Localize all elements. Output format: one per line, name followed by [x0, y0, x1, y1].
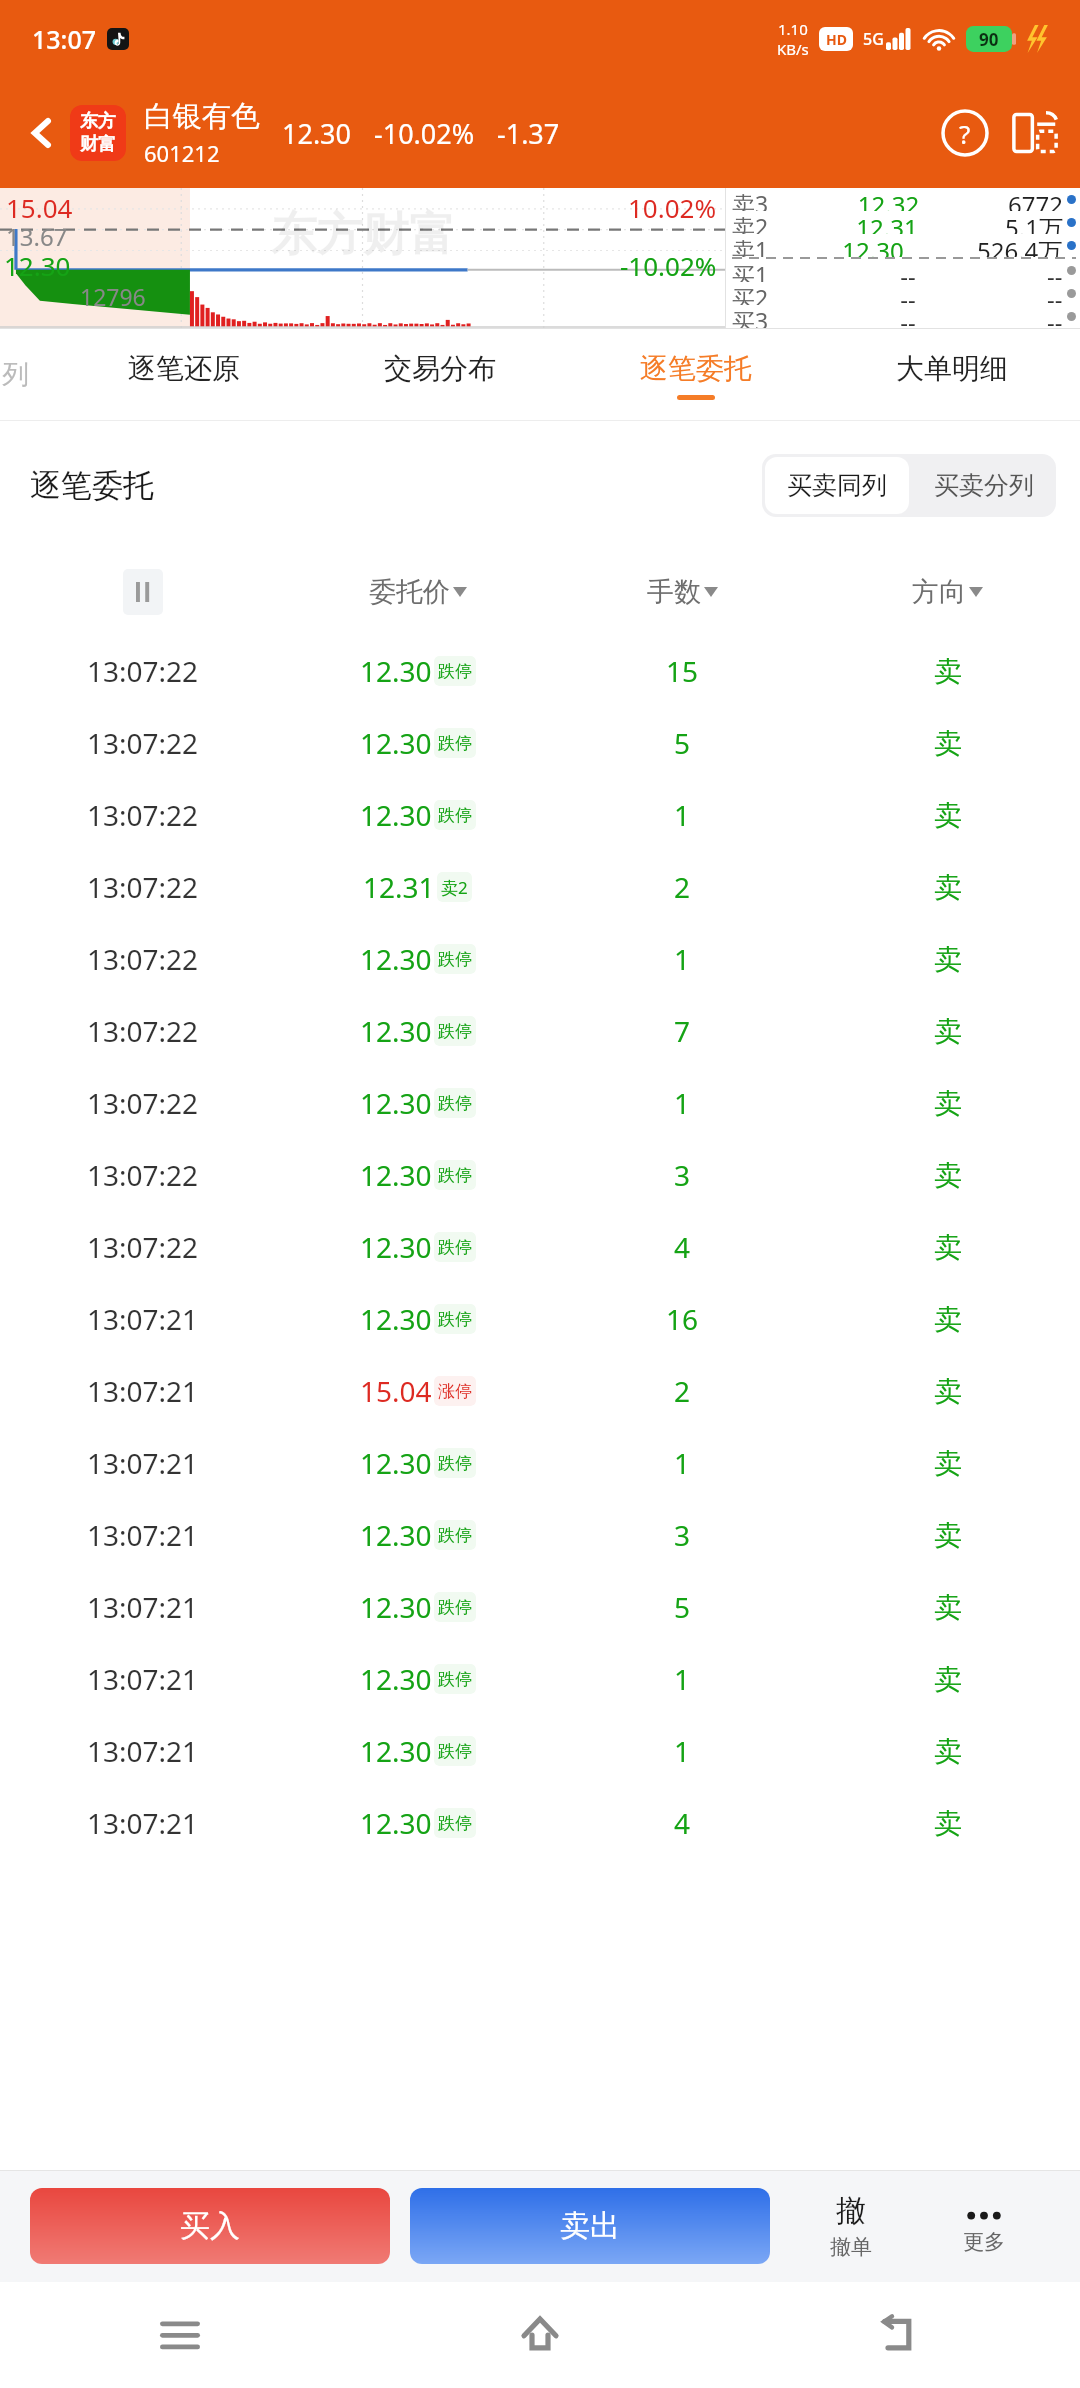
staticText: 4: [674, 1804, 691, 1842]
staticText: 买1: [732, 259, 769, 282]
staticText: 卖: [934, 726, 962, 761]
staticText: 1: [674, 1660, 691, 1698]
staticText: 跌停: [438, 1741, 472, 1762]
staticText: 13:07:21: [87, 1300, 199, 1338]
button[interactable]: 买卖分列: [934, 470, 1034, 501]
button[interactable]: 大单明细: [824, 329, 1080, 421]
staticText: 卖: [934, 1158, 962, 1193]
button[interactable]: 13:07:21: [0, 1787, 1080, 1859]
button[interactable]: 13:07:22: [0, 707, 1080, 779]
staticText: 跌停: [438, 1309, 472, 1330]
button[interactable]: Back: [720, 2282, 1080, 2388]
staticText: 3: [674, 1156, 691, 1194]
staticText: 买卖分列: [934, 470, 1034, 501]
button[interactable]: 13:07:21: [0, 1571, 1080, 1643]
button[interactable]: 买卖同列: [787, 470, 887, 501]
button[interactable]: 逐笔还原: [55, 329, 312, 421]
staticText: 13.67: [6, 220, 68, 253]
button[interactable]: 13:07:22: [0, 995, 1080, 1067]
button[interactable]: 买1: [732, 259, 1076, 282]
button[interactable]: 卖2: [732, 211, 1076, 234]
button[interactable]: 13:07:21: [0, 1643, 1080, 1715]
button[interactable]: 13:07:21: [0, 1499, 1080, 1571]
button[interactable]: 买2: [732, 282, 1076, 305]
staticText: 卖: [934, 1734, 962, 1769]
button[interactable]: Help: [934, 102, 996, 164]
button[interactable]: 13:07:22: [0, 779, 1080, 851]
staticText: 12796: [80, 281, 146, 312]
button[interactable]: 13:07:21: [0, 1355, 1080, 1427]
button[interactable]: 13:07:21: [0, 1427, 1080, 1499]
button[interactable]: Recent apps: [0, 2282, 360, 2388]
staticText: 12.30: [360, 1444, 432, 1482]
staticText: 7: [674, 1012, 691, 1050]
staticText: 委托价: [369, 575, 450, 609]
staticText: -10.02%: [374, 115, 475, 152]
staticText: --: [1047, 282, 1063, 305]
staticText: 12.30: [360, 652, 432, 690]
staticText: 东方: [80, 110, 116, 133]
staticText: 12.31: [363, 868, 435, 906]
staticText: 买卖同列: [787, 470, 887, 501]
staticText: 12.30: [360, 724, 432, 762]
button[interactable]: 委托价: [285, 549, 550, 635]
button[interactable]: 13:07:21: [0, 1715, 1080, 1787]
staticText: 涨停: [438, 1381, 472, 1402]
button[interactable]: Split screen: [1004, 102, 1066, 164]
staticText: 跌停: [438, 1669, 472, 1690]
button[interactable]: 13:07:21: [0, 1283, 1080, 1355]
staticText: 跌停: [438, 661, 472, 682]
button[interactable]: 13:07:22: [0, 1139, 1080, 1211]
button[interactable]: 卖出: [410, 2188, 770, 2264]
staticText: 卖: [934, 1590, 962, 1625]
button[interactable]: 手数: [550, 549, 815, 635]
button[interactable]: 卖3: [732, 188, 1076, 211]
button[interactable]: 13:07:22: [0, 923, 1080, 995]
staticText: ?: [959, 116, 971, 151]
staticText: 13:07:21: [87, 1444, 199, 1482]
button[interactable]: 卖1: [732, 234, 1076, 257]
button[interactable]: 更多: [917, 2170, 1050, 2282]
staticText: 手数: [647, 575, 701, 609]
button[interactable]: Home: [360, 2282, 720, 2388]
staticText: 卖: [934, 1302, 962, 1337]
staticText: 12.30: [360, 1660, 432, 1698]
staticText: 跌停: [438, 1453, 472, 1474]
staticText: 逐笔委托: [640, 351, 752, 386]
staticText: --: [769, 259, 1047, 282]
button[interactable]: 撤: [784, 2170, 917, 2282]
staticText: 2: [674, 868, 691, 906]
staticText: 15.04: [360, 1372, 432, 1410]
button[interactable]: Back: [14, 105, 70, 161]
staticText: 更多: [963, 2229, 1005, 2255]
button[interactable]: 13:07:22: [0, 1211, 1080, 1283]
staticText: 大单明细: [896, 351, 1008, 386]
button[interactable]: 逐笔委托: [568, 329, 824, 421]
staticText: 财富: [80, 133, 116, 156]
button[interactable]: Pause: [123, 569, 163, 615]
staticText: 跌停: [438, 1237, 472, 1258]
button[interactable]: 13:07:22: [0, 851, 1080, 923]
staticText: --: [769, 305, 1047, 328]
staticText: 12.30: [360, 1156, 432, 1194]
staticText: 5G: [863, 28, 884, 50]
staticText: 12.30: [360, 1300, 432, 1338]
staticText: 13:07: [32, 22, 97, 56]
staticText: 白银有色: [144, 98, 260, 135]
staticText: 16: [666, 1300, 699, 1338]
staticText: 卖: [934, 1518, 962, 1553]
button[interactable]: 交易分布: [312, 329, 568, 421]
staticText: 逐笔还原: [128, 351, 240, 386]
staticText: 12.31: [769, 211, 1005, 234]
staticText: 交易分布: [384, 351, 496, 386]
button[interactable]: 13:07:22: [0, 1067, 1080, 1139]
staticText: 13:07:21: [87, 1660, 199, 1698]
staticText: 撤: [836, 2192, 866, 2230]
button[interactable]: 买3: [732, 305, 1076, 328]
button[interactable]: 13:07:22: [0, 635, 1080, 707]
button[interactable]: 方向: [815, 549, 1080, 635]
staticText: 12.30: [360, 1588, 432, 1626]
button[interactable]: 买入: [30, 2188, 390, 2264]
button[interactable]: East Money: [70, 105, 126, 161]
staticText: 1: [674, 1732, 691, 1770]
